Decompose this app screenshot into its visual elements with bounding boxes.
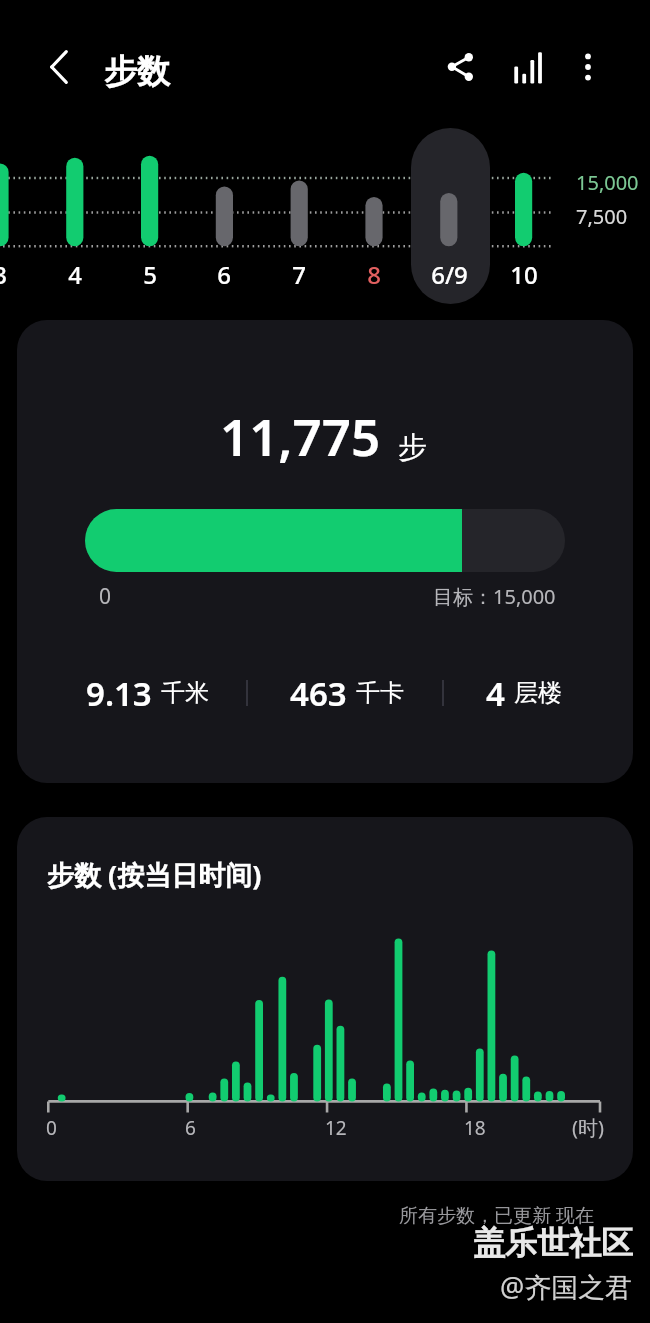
staticText: 18 bbox=[464, 1115, 486, 1141]
button[interactable]: Back bbox=[29, 37, 89, 97]
staticText: 盖乐世社区 bbox=[473, 1223, 633, 1263]
staticText: 0 bbox=[99, 582, 112, 611]
button[interactable]: 步数 (按当日时间) bbox=[17, 817, 633, 1181]
staticText: 4 bbox=[68, 258, 82, 291]
button[interactable]: 4 bbox=[431, 670, 617, 716]
staticText: 7,500 bbox=[576, 203, 628, 230]
staticText: 11,775 bbox=[220, 401, 381, 470]
button[interactable]: 11,775 bbox=[17, 320, 633, 783]
staticText: @齐国之君 bbox=[500, 1268, 633, 1305]
button[interactable]: 10 bbox=[484, 257, 564, 291]
staticText: 15,000 bbox=[576, 169, 639, 196]
staticText: 6 bbox=[217, 258, 231, 291]
staticText: 所有步数，已更新 现在 bbox=[399, 1202, 594, 1228]
staticText: (时) bbox=[572, 1114, 604, 1141]
button[interactable]: 463 bbox=[251, 670, 443, 716]
button[interactable]: 5 bbox=[110, 257, 190, 291]
staticText: 6/9 bbox=[431, 258, 468, 291]
button[interactable]: 3 bbox=[0, 257, 40, 291]
button[interactable]: 9.13 bbox=[53, 670, 241, 716]
staticText: 10 bbox=[510, 258, 538, 291]
staticText: 步数 (按当日时间) bbox=[47, 856, 262, 893]
staticText: 8 bbox=[367, 258, 381, 291]
staticText: 5 bbox=[143, 258, 157, 291]
staticText: 4 bbox=[486, 671, 505, 716]
button[interactable]: 8 bbox=[334, 257, 414, 291]
staticText: 9.13 bbox=[86, 671, 152, 716]
button[interactable]: 7 bbox=[259, 257, 339, 291]
button[interactable]: Share bbox=[430, 37, 490, 97]
button[interactable]: 6/9 bbox=[409, 257, 489, 291]
staticText: 步数 bbox=[104, 51, 170, 93]
staticText: 12 bbox=[325, 1115, 347, 1141]
staticText: 层楼 bbox=[514, 678, 562, 708]
staticText: 6 bbox=[185, 1115, 196, 1141]
button[interactable]: Statistics bbox=[498, 38, 558, 98]
button[interactable]: More options bbox=[558, 37, 618, 97]
button[interactable]: 6 bbox=[184, 257, 264, 291]
staticText: 0 bbox=[46, 1115, 57, 1141]
staticText: 步 bbox=[398, 429, 427, 466]
staticText: 千米 bbox=[161, 678, 209, 708]
button[interactable]: 4 bbox=[35, 257, 115, 291]
staticText: 3 bbox=[0, 258, 7, 291]
staticText: 目标：15,000 bbox=[433, 583, 556, 610]
staticText: 7 bbox=[292, 258, 306, 291]
staticText: 463 bbox=[290, 671, 347, 716]
staticText: 千卡 bbox=[356, 678, 404, 708]
